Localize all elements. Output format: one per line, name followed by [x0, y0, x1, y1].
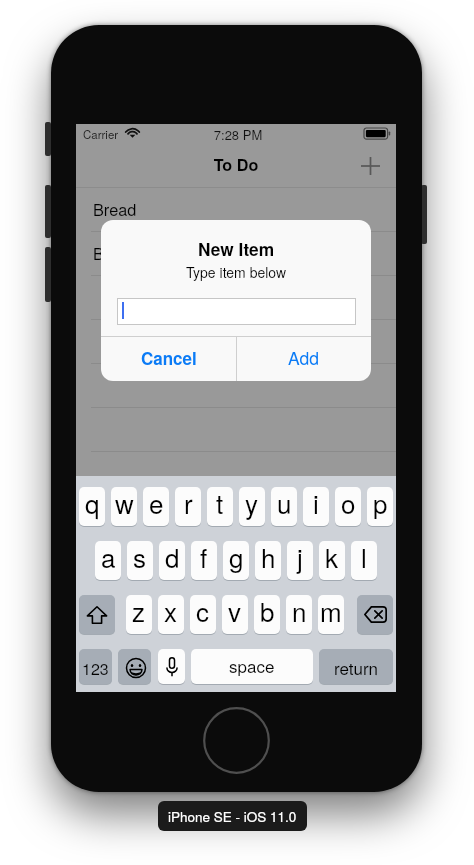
- button[interactable]: s: [127, 541, 153, 580]
- button[interactable]: Add: [236, 336, 371, 381]
- button[interactable]: [76, 364, 396, 408]
- staticText: d: [165, 541, 180, 575]
- button[interactable]: iPhone SE - iOS 11.0: [158, 801, 307, 831]
- staticText: a: [101, 541, 116, 575]
- button[interactable]: a: [95, 541, 121, 580]
- staticText: o: [341, 487, 356, 521]
- staticText: v: [228, 595, 242, 629]
- staticText: c: [196, 595, 210, 629]
- button[interactable]: p: [367, 487, 393, 526]
- staticText: i: [313, 487, 319, 521]
- staticText: New Item: [101, 237, 371, 262]
- button[interactable]: Dictate: [158, 649, 185, 684]
- button[interactable]: b: [254, 595, 280, 634]
- button[interactable]: w: [111, 487, 137, 526]
- button[interactable]: return: [319, 649, 393, 684]
- staticText: iPhone SE - iOS 11.0: [168, 807, 297, 826]
- button[interactable]: i: [303, 487, 329, 526]
- button[interactable]: e: [143, 487, 169, 526]
- button[interactable]: 123: [79, 649, 112, 684]
- staticText: To Do: [76, 153, 396, 176]
- button[interactable]: Add item: [352, 144, 396, 188]
- staticText: Type item below: [101, 262, 371, 282]
- staticText: m: [320, 595, 342, 629]
- button[interactable]: Backspace: [357, 595, 393, 634]
- staticText: w: [115, 487, 134, 521]
- button[interactable]: v: [222, 595, 248, 634]
- button[interactable]: g: [223, 541, 249, 580]
- button[interactable]: r: [175, 487, 201, 526]
- button[interactable]: f: [191, 541, 217, 580]
- staticText: Bread: [93, 197, 137, 220]
- staticText: f: [200, 541, 208, 575]
- staticText: Add: [288, 345, 319, 370]
- button[interactable]: Emoji: [118, 649, 151, 684]
- button[interactable]: t: [207, 487, 233, 526]
- button[interactable]: space: [191, 649, 313, 684]
- button[interactable]: m: [318, 595, 344, 634]
- staticText: Carrier: [83, 126, 119, 142]
- button[interactable]: [76, 276, 396, 320]
- button[interactable]: l: [351, 541, 377, 580]
- button[interactable]: o: [335, 487, 361, 526]
- button[interactable]: q: [79, 487, 105, 526]
- staticText: Cancel: [141, 346, 197, 370]
- staticText: s: [133, 541, 147, 575]
- staticText: g: [229, 541, 244, 575]
- staticText: q: [85, 487, 100, 521]
- button[interactable]: z: [126, 595, 152, 634]
- staticText: e: [149, 487, 164, 521]
- staticText: u: [277, 487, 292, 521]
- button[interactable]: n: [286, 595, 312, 634]
- staticText: b: [260, 595, 275, 629]
- staticText: return: [334, 655, 379, 679]
- button[interactable]: j: [287, 541, 313, 580]
- button[interactable]: c: [190, 595, 216, 634]
- staticText: p: [373, 487, 388, 521]
- button[interactable]: Cancel: [101, 336, 236, 381]
- button[interactable]: x: [158, 595, 184, 634]
- staticText: r: [184, 487, 193, 521]
- button[interactable]: y: [239, 487, 265, 526]
- staticText: 7:28 PM: [78, 125, 396, 144]
- staticText: t: [216, 487, 224, 521]
- staticText: z: [132, 595, 146, 629]
- button[interactable]: d: [159, 541, 185, 580]
- button[interactable]: Butter: [76, 232, 396, 276]
- staticText: j: [297, 541, 303, 575]
- staticText: 123: [82, 657, 109, 680]
- staticText: x: [164, 595, 178, 629]
- staticText: k: [325, 541, 339, 575]
- button[interactable]: [76, 320, 396, 364]
- button[interactable]: u: [271, 487, 297, 526]
- staticText: l: [361, 541, 367, 575]
- button[interactable]: h: [255, 541, 281, 580]
- button[interactable]: Shift: [79, 595, 115, 634]
- button[interactable]: k: [319, 541, 345, 580]
- staticText: n: [292, 595, 307, 629]
- staticText: h: [261, 541, 276, 575]
- staticText: y: [245, 487, 259, 521]
- staticText: Butter: [93, 241, 137, 264]
- button[interactable]: Bread: [76, 188, 396, 232]
- staticText: space: [229, 653, 275, 677]
